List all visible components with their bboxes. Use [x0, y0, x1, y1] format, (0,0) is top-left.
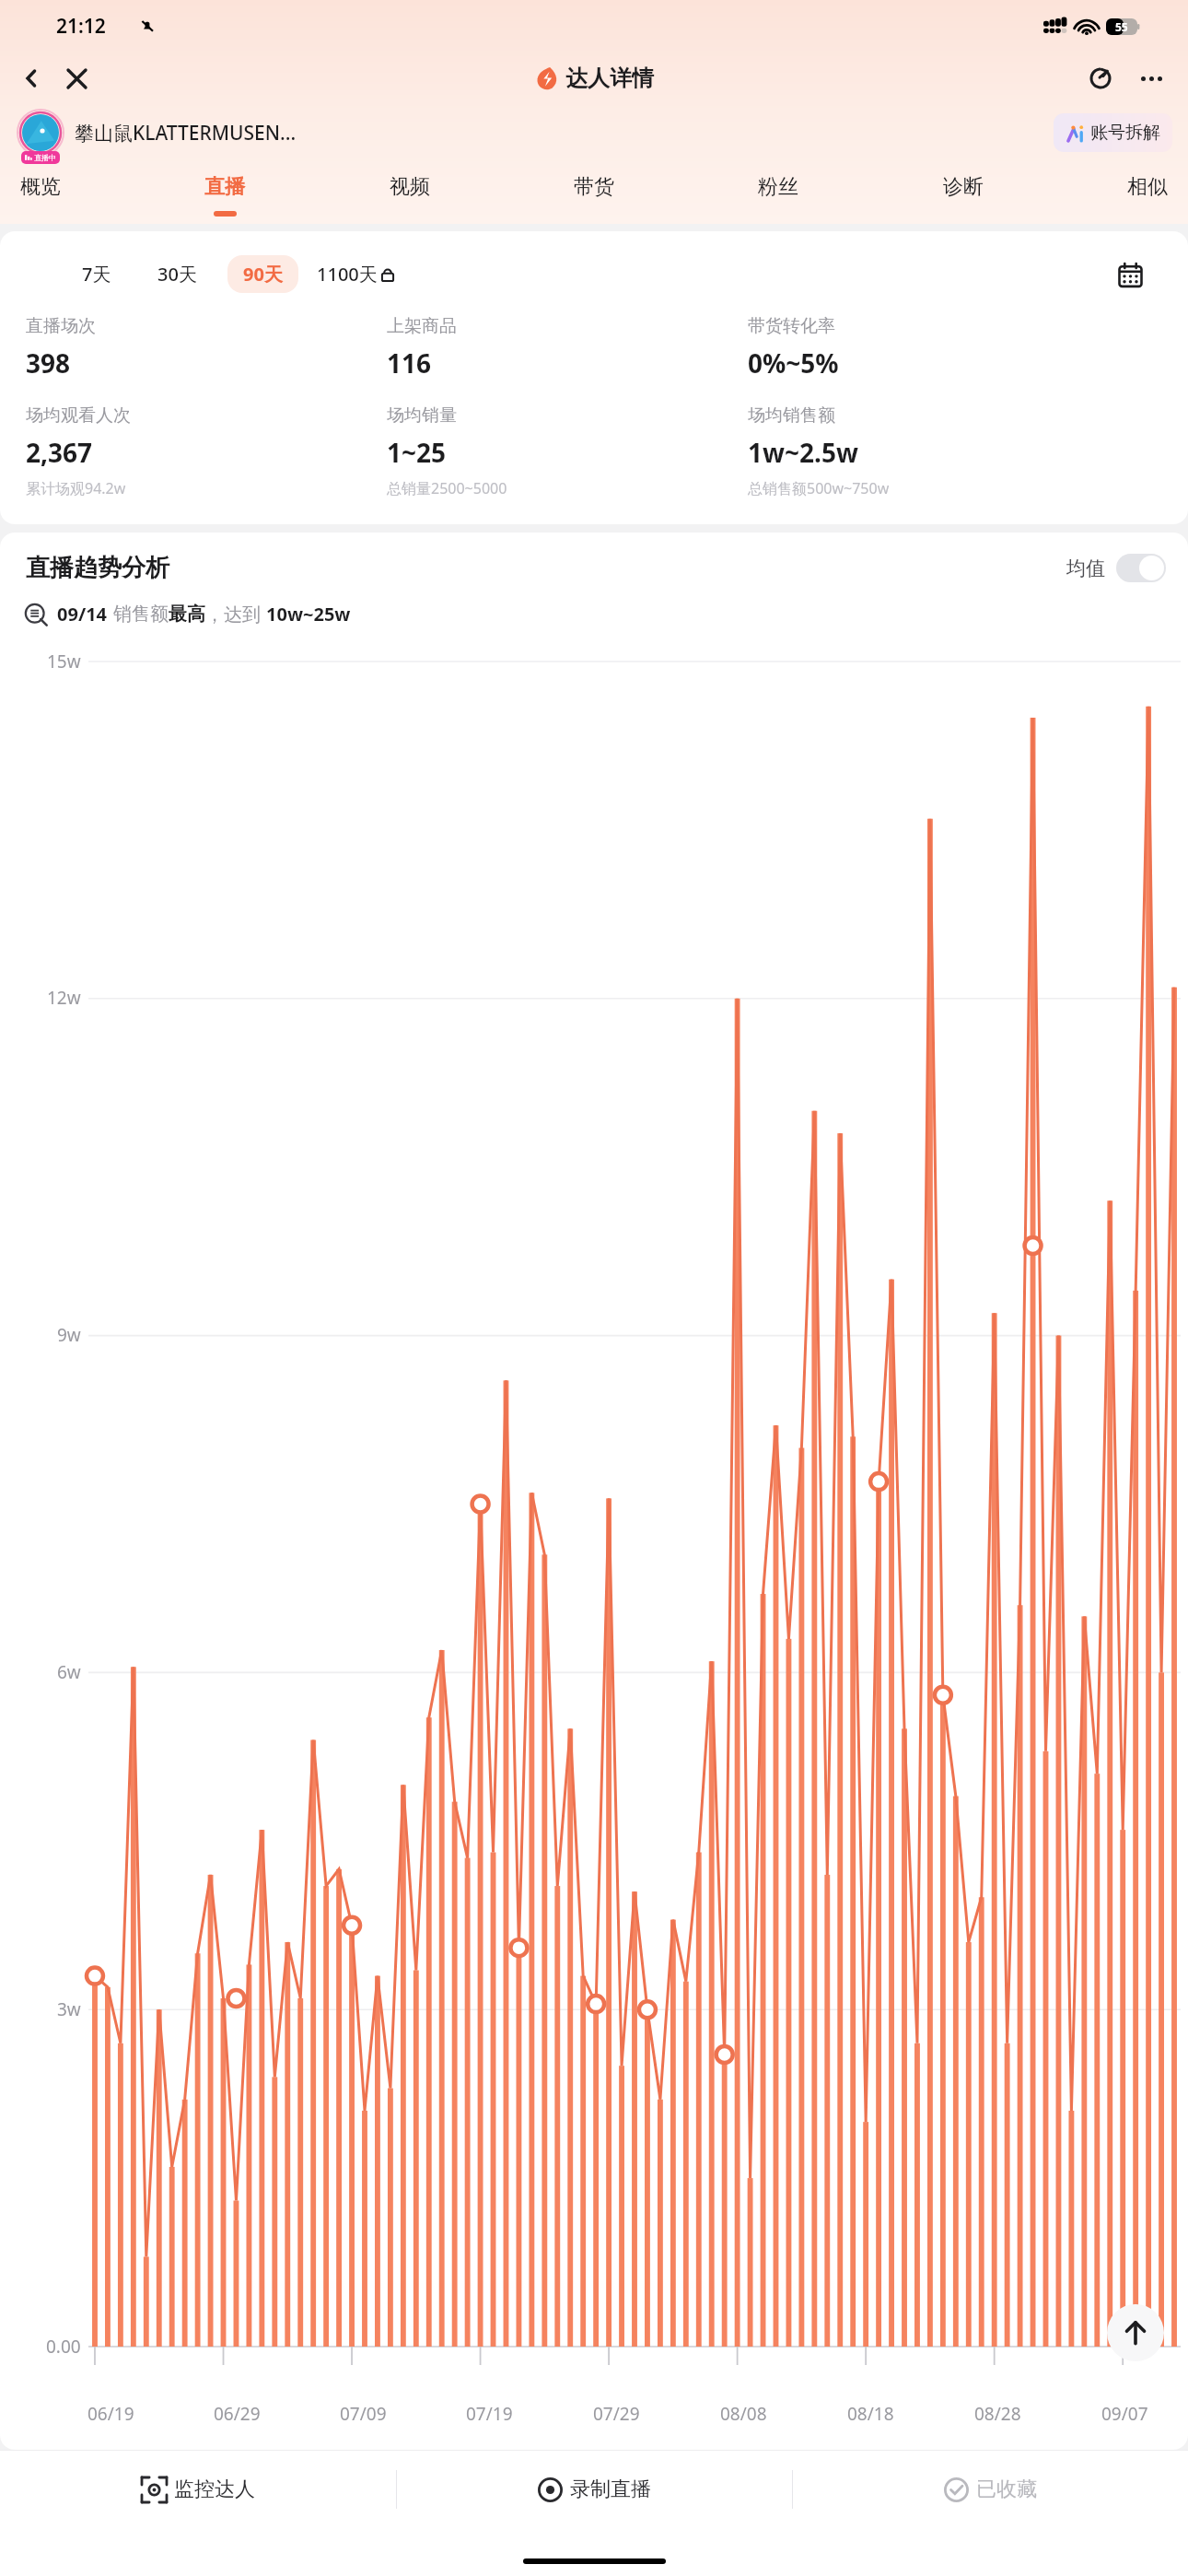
- staticText: 3w: [57, 1997, 81, 2021]
- button[interactable]: 概览: [13, 167, 68, 218]
- staticText: 30天: [157, 262, 197, 287]
- staticText: 08/18: [847, 2402, 894, 2426]
- staticText: 上架商品: [387, 315, 457, 337]
- staticText: 累计场观94.2w: [26, 478, 126, 498]
- button[interactable]: 粉丝: [751, 167, 806, 218]
- staticText: 已收藏: [976, 2476, 1037, 2502]
- button[interactable]: 诊断: [936, 167, 991, 218]
- button[interactable]: 30天: [142, 255, 213, 293]
- staticText: 诊断: [943, 174, 984, 200]
- staticText: 场均销售额: [748, 404, 835, 427]
- staticText: 0%~5%: [748, 345, 839, 381]
- staticText: 直播趋势分析: [26, 553, 169, 583]
- staticText: 账号拆解: [1090, 122, 1160, 144]
- button[interactable]: Close: [56, 58, 97, 99]
- button[interactable]: 直播: [197, 167, 252, 224]
- staticText: 相似: [1127, 174, 1168, 200]
- staticText: 直播场次: [26, 315, 96, 337]
- staticText: 6w: [57, 1660, 81, 1684]
- staticText: 55: [1115, 19, 1128, 34]
- staticText: 1~25: [387, 435, 447, 470]
- button[interactable]: Pick date range: [1112, 257, 1147, 292]
- staticText: 总销量2500~5000: [387, 478, 507, 498]
- staticText: 9w: [57, 1323, 81, 1347]
- staticText: 08/08: [720, 2402, 767, 2426]
- staticText: 0.00: [46, 2335, 81, 2359]
- staticText: 销售额: [113, 603, 169, 626]
- button[interactable]: 监控达人: [0, 2451, 396, 2528]
- button[interactable]: Average toggle: [1116, 554, 1166, 582]
- staticText: 10w~25w: [266, 602, 351, 626]
- staticText: 带货: [574, 174, 614, 200]
- button[interactable]: 7天: [66, 255, 127, 293]
- staticText: 达人详情: [565, 64, 654, 92]
- button[interactable]: 账号拆解: [1054, 113, 1172, 152]
- button[interactable]: 视频: [382, 167, 437, 218]
- staticText: 07/09: [340, 2402, 387, 2426]
- staticText: 总销售额500w~750w: [748, 478, 890, 498]
- staticText: 1100天: [317, 262, 378, 287]
- staticText: 398: [26, 345, 71, 381]
- staticText: 带货转化率: [748, 315, 835, 337]
- staticText: 06/19: [87, 2402, 134, 2426]
- staticText: 21:12: [56, 13, 106, 40]
- staticText: 12w: [47, 986, 81, 1010]
- button[interactable]: 1100天: [313, 255, 399, 293]
- staticText: 15w: [47, 650, 81, 673]
- staticText: 均值: [1066, 556, 1105, 580]
- staticText: 直播: [204, 174, 245, 200]
- button[interactable]: More options: [1131, 58, 1171, 99]
- button[interactable]: Scroll to top: [1107, 2304, 1164, 2361]
- button[interactable]: Refresh: [1080, 58, 1121, 99]
- staticText: 最高: [169, 603, 205, 626]
- staticText: 07/29: [593, 2402, 640, 2426]
- staticText: 直播中: [34, 153, 56, 162]
- staticText: 攀山鼠KLATTERMUSEN...: [75, 120, 1048, 146]
- staticText: 1w~2.5w: [748, 435, 858, 470]
- staticText: 监控达人: [174, 2476, 255, 2502]
- button[interactable]: Back: [11, 58, 52, 99]
- staticText: 08/28: [974, 2402, 1021, 2426]
- staticText: 09/14: [57, 602, 108, 626]
- button[interactable]: 相似: [1120, 167, 1175, 218]
- staticText: 录制直播: [570, 2476, 651, 2502]
- staticText: 09/07: [1101, 2402, 1148, 2426]
- button[interactable]: 录制直播: [397, 2451, 792, 2528]
- staticText: 概览: [20, 174, 61, 200]
- staticText: 2,367: [26, 435, 93, 470]
- button[interactable]: 90天: [227, 255, 298, 293]
- staticText: 视频: [390, 174, 430, 200]
- staticText: 场均销量: [387, 404, 457, 427]
- staticText: ，达到: [205, 602, 266, 626]
- button[interactable]: 带货: [566, 167, 622, 218]
- staticText: 06/29: [214, 2402, 261, 2426]
- staticText: 116: [387, 345, 432, 381]
- staticText: 90天: [243, 262, 283, 287]
- button[interactable]: 已收藏: [793, 2451, 1188, 2528]
- staticText: 场均观看人次: [26, 404, 131, 427]
- staticText: 07/19: [466, 2402, 513, 2426]
- staticText: 7天: [82, 262, 111, 287]
- staticText: 粉丝: [758, 174, 798, 200]
